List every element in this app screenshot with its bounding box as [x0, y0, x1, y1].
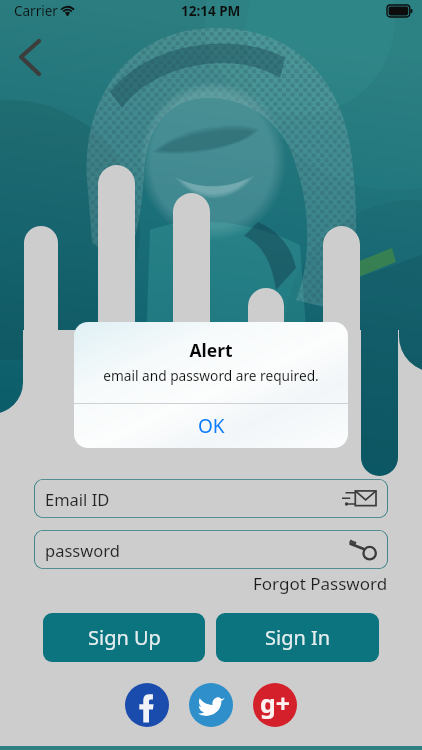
staticText: email and password are required.: [74, 366, 348, 385]
staticText: g+: [260, 686, 291, 720]
staticText: Sign Up: [88, 624, 161, 651]
button[interactable]: Sign in with Google: [253, 683, 297, 727]
button[interactable]: Sign in with Twitter: [189, 683, 233, 727]
button[interactable]: Email ID: [34, 479, 388, 518]
staticText: 12:14 PM: [181, 2, 241, 20]
button[interactable]: Forgot Password: [253, 572, 388, 595]
button[interactable]: Sign In: [216, 613, 379, 662]
staticText: OK: [198, 413, 225, 439]
button[interactable]: Sign in with Facebook: [125, 683, 169, 727]
staticText: password: [45, 539, 120, 561]
staticText: Alert: [74, 338, 348, 362]
button[interactable]: password: [34, 530, 388, 569]
staticText: Sign In: [265, 624, 331, 651]
button[interactable]: Back: [8, 32, 54, 78]
button[interactable]: OK: [74, 404, 348, 448]
staticText: Forgot Password: [253, 572, 388, 595]
staticText: Email ID: [45, 488, 110, 510]
button[interactable]: Sign Up: [43, 613, 205, 662]
staticText: Carrier: [14, 2, 58, 20]
